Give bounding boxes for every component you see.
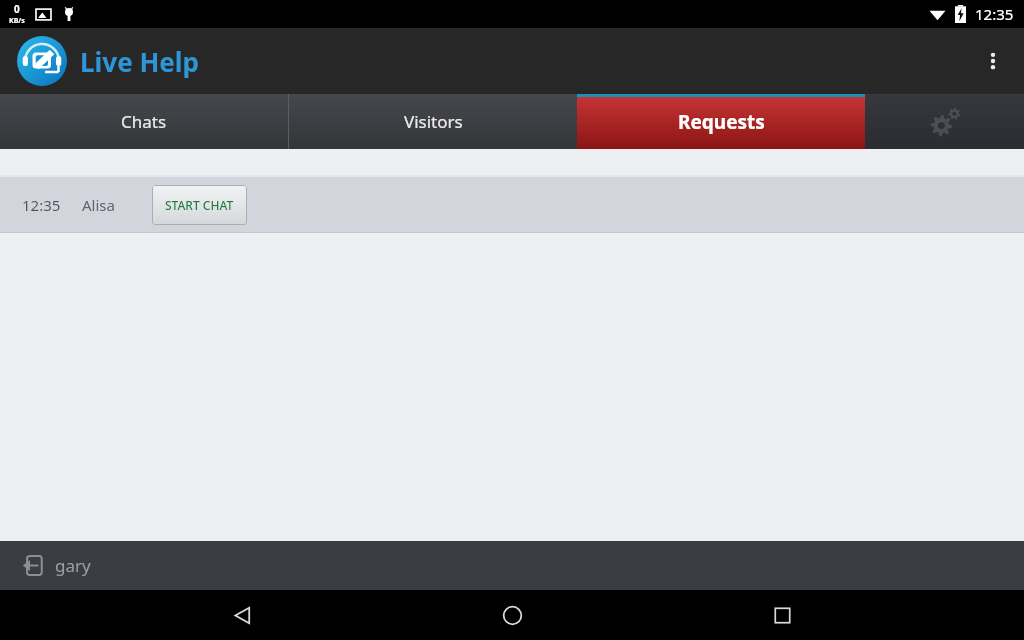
- staticText: Alisa: [82, 195, 115, 215]
- button[interactable]: Back: [214, 590, 270, 640]
- button[interactable]: START CHAT: [152, 185, 247, 225]
- staticText: 12:35: [22, 195, 61, 215]
- button[interactable]: Settings: [865, 94, 1024, 149]
- staticText: Chats: [121, 110, 167, 133]
- button[interactable]: Home: [484, 590, 540, 640]
- button[interactable]: Requests: [577, 94, 865, 149]
- other: Log out: [22, 555, 43, 576]
- staticText: Visitors: [404, 110, 463, 133]
- button[interactable]: Recent apps: [754, 590, 810, 640]
- button[interactable]: 12:35: [0, 177, 1024, 232]
- staticText: Requests: [678, 109, 765, 135]
- staticText: Live Help: [80, 44, 200, 79]
- button[interactable]: Visitors: [289, 94, 577, 149]
- staticText: 12:35: [975, 4, 1014, 24]
- staticText: gary: [55, 554, 91, 577]
- button[interactable]: Log out: [0, 541, 1024, 590]
- button[interactable]: Chats: [0, 94, 288, 149]
- staticText: KB/s: [9, 16, 25, 26]
- staticText: START CHAT: [165, 197, 234, 213]
- button[interactable]: More options: [969, 37, 1017, 85]
- staticText: 0: [14, 2, 20, 16]
